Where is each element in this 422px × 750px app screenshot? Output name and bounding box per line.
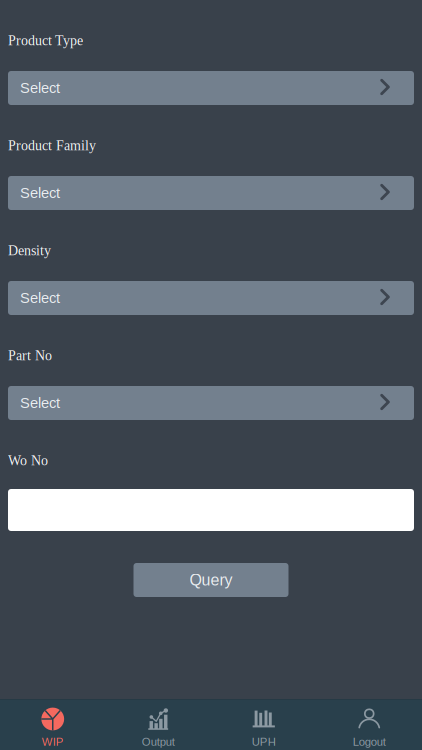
staticText: Output <box>142 735 175 748</box>
staticText: Density <box>8 243 51 258</box>
staticText: Product Family <box>8 138 96 153</box>
button[interactable]: Wo No text field <box>8 489 414 531</box>
staticText: Product Type <box>8 33 83 48</box>
button[interactable]: Select <box>8 176 414 210</box>
staticText: Wo No <box>8 453 48 468</box>
button[interactable]: Output <box>105 699 211 750</box>
staticText: Query <box>189 571 232 589</box>
button[interactable]: Select <box>8 281 414 315</box>
button[interactable]: Select <box>8 386 414 420</box>
button[interactable]: Query <box>133 563 288 597</box>
staticText: Select <box>20 185 60 201</box>
button[interactable]: Select <box>8 71 414 105</box>
staticText: Select <box>20 80 60 96</box>
staticText: UPH <box>252 735 276 748</box>
button[interactable]: Logout <box>316 699 422 750</box>
staticText: Part No <box>8 348 52 363</box>
button[interactable]: UPH <box>211 699 316 750</box>
staticText: WIP <box>42 735 64 748</box>
staticText: Select <box>20 290 60 306</box>
staticText: Logout <box>353 735 386 748</box>
staticText: Select <box>20 395 60 411</box>
button[interactable]: WIP <box>0 699 105 750</box>
